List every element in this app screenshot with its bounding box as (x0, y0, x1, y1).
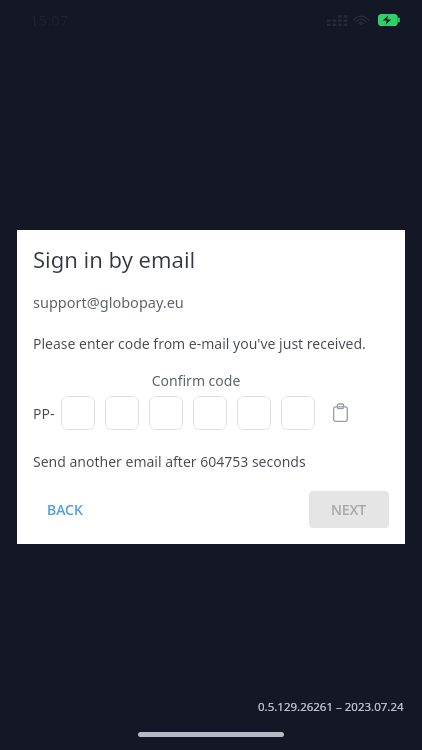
button[interactable]: Code digit 6 (281, 396, 315, 430)
staticText: Please enter code from e-mail you've jus… (33, 334, 366, 353)
button[interactable]: Paste code (325, 398, 355, 428)
staticText: Confirm code (33, 371, 359, 390)
staticText: 0.5.129.26261 – 2023.07.24 (258, 699, 404, 715)
button[interactable]: Code digit 3 (149, 396, 183, 430)
staticText: Sign in by email (33, 244, 196, 274)
button[interactable]: NEXT (309, 491, 389, 528)
staticText: BACK (47, 500, 83, 519)
button[interactable]: Code digit 4 (193, 396, 227, 430)
staticText: Send another email after 604753 seconds (33, 452, 306, 471)
button[interactable]: Code digit 1 (61, 396, 95, 430)
staticText: support@globopay.eu (33, 292, 184, 312)
button[interactable]: Code digit 2 (105, 396, 139, 430)
button[interactable]: BACK (33, 492, 97, 527)
button[interactable]: Code digit 5 (237, 396, 271, 430)
staticText: PP- (33, 404, 55, 423)
staticText: NEXT (331, 500, 367, 519)
